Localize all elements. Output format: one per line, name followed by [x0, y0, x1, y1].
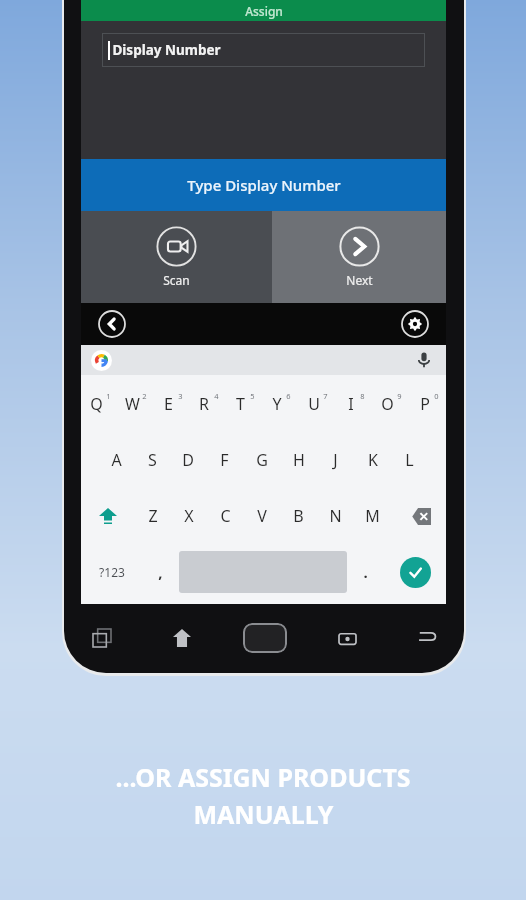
- staticText: M: [365, 505, 380, 527]
- button[interactable]: Google: [91, 350, 112, 371]
- button[interactable]: ,: [142, 544, 179, 600]
- staticText: I: [348, 393, 354, 415]
- button[interactable]: C: [207, 488, 243, 544]
- staticText: ?123: [99, 564, 125, 580]
- staticText: Next: [346, 272, 373, 288]
- button[interactable]: R: [189, 375, 225, 432]
- button[interactable]: Backspace: [391, 488, 446, 544]
- staticText: Assign: [245, 3, 283, 19]
- staticText: 4: [214, 391, 219, 401]
- staticText: V: [257, 505, 267, 527]
- button[interactable]: V: [243, 488, 280, 544]
- staticText: J: [333, 449, 338, 471]
- button[interactable]: B: [280, 488, 317, 544]
- staticText: 8: [360, 391, 365, 401]
- staticText: N: [329, 505, 342, 527]
- staticText: B: [293, 505, 304, 527]
- staticText: R: [199, 393, 209, 415]
- staticText: Display Number: [112, 41, 221, 59]
- button[interactable]: Type Display Number: [81, 159, 446, 211]
- staticText: O: [381, 393, 394, 415]
- button[interactable]: T: [225, 375, 261, 432]
- button[interactable]: J: [317, 432, 354, 488]
- staticText: .: [363, 562, 368, 582]
- button[interactable]: ?123: [81, 544, 142, 600]
- button[interactable]: S: [134, 432, 170, 488]
- button[interactable]: H: [280, 432, 317, 488]
- staticText: X: [184, 505, 194, 527]
- button[interactable]: M: [354, 488, 391, 544]
- staticText: W: [125, 393, 140, 415]
- staticText: Y: [272, 393, 282, 415]
- staticText: Type Display Number: [187, 175, 341, 195]
- staticText: G: [256, 449, 268, 471]
- button[interactable]: U: [298, 375, 335, 432]
- staticText: A: [111, 449, 122, 471]
- staticText: 2: [142, 391, 147, 401]
- staticText: 6: [286, 391, 291, 401]
- staticText: 1: [106, 391, 111, 401]
- button[interactable]: Voice input: [414, 350, 434, 370]
- button[interactable]: Enter: [400, 557, 431, 588]
- button[interactable]: P: [409, 375, 446, 432]
- staticText: K: [368, 449, 378, 471]
- button[interactable]: G: [243, 432, 280, 488]
- button[interactable]: E: [153, 375, 189, 432]
- staticText: 0: [434, 391, 439, 401]
- staticText: Z: [148, 505, 158, 527]
- button[interactable]: Shift: [81, 488, 135, 544]
- button[interactable]: Z: [135, 488, 171, 544]
- staticText: 9: [397, 391, 402, 401]
- button[interactable]: O: [372, 375, 409, 432]
- staticText: ,: [158, 562, 163, 582]
- staticText: Scan: [163, 272, 190, 288]
- button[interactable]: L: [391, 432, 428, 488]
- staticText: 3: [178, 391, 183, 401]
- button[interactable]: Back: [98, 310, 126, 338]
- button[interactable]: X: [171, 488, 207, 544]
- staticText: U: [308, 393, 320, 415]
- button[interactable]: N: [317, 488, 354, 544]
- staticText: H: [293, 449, 305, 471]
- button[interactable]: Display Number: [102, 33, 425, 67]
- button[interactable]: Scan: [81, 211, 272, 303]
- staticText: D: [182, 449, 194, 471]
- button[interactable]: Settings: [401, 310, 429, 338]
- staticText: ...OR ASSIGN PRODUCTS: [115, 760, 411, 794]
- button[interactable]: Q: [81, 375, 117, 432]
- button[interactable]: W: [117, 375, 153, 432]
- button[interactable]: Next: [272, 211, 446, 303]
- staticText: MANUALLY: [193, 797, 334, 831]
- button[interactable]: A: [98, 432, 134, 488]
- staticText: 7: [323, 391, 328, 401]
- button[interactable]: .: [347, 544, 384, 600]
- staticText: 5: [250, 391, 255, 401]
- staticText: F: [220, 449, 229, 471]
- staticText: L: [405, 449, 414, 471]
- button[interactable]: K: [354, 432, 391, 488]
- button[interactable]: F: [206, 432, 243, 488]
- button[interactable]: Y: [261, 375, 298, 432]
- staticText: P: [420, 393, 430, 415]
- button[interactable]: D: [170, 432, 206, 488]
- button[interactable]: I: [335, 375, 372, 432]
- staticText: Q: [90, 393, 103, 415]
- staticText: E: [164, 393, 173, 415]
- staticText: T: [236, 393, 245, 415]
- staticText: C: [220, 505, 231, 527]
- staticText: S: [148, 449, 157, 471]
- button[interactable]: Home: [243, 623, 287, 653]
